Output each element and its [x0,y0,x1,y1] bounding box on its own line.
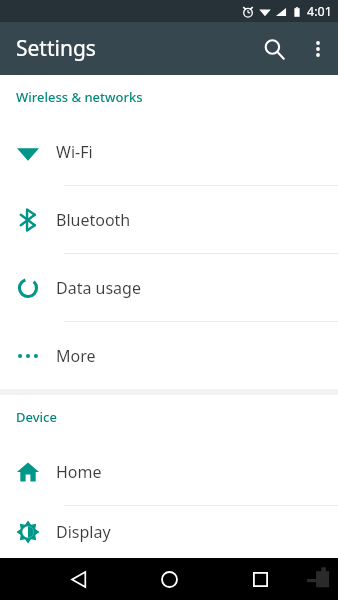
staticText: Settings [16,34,96,63]
staticText: Device [16,408,57,426]
staticText: Home [56,461,102,483]
button[interactable]: Data usage [0,254,338,321]
staticText: More [56,345,96,367]
staticText: Wi-Fi [56,141,93,163]
button[interactable]: Back [57,558,99,600]
button[interactable]: Wi-Fi [0,118,338,185]
staticText: 4:01 [307,3,332,20]
button[interactable]: Home [148,558,190,600]
button[interactable]: Search [250,25,298,73]
button[interactable]: Display [0,506,338,558]
button[interactable]: Recent apps [239,558,281,600]
staticText: Display [56,521,111,543]
button[interactable]: Bluetooth [0,186,338,253]
button[interactable]: More options [298,29,338,69]
staticText: Bluetooth [56,209,131,231]
button[interactable]: Home [0,438,338,505]
button[interactable]: More [0,322,338,389]
staticText: Wireless & networks [16,88,143,106]
staticText: Data usage [56,277,141,299]
